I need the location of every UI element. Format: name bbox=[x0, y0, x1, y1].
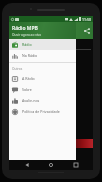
staticText: Rádio bbox=[22, 42, 32, 47]
staticText: 11:50 bbox=[82, 17, 91, 22]
button[interactable]: Home bbox=[44, 160, 58, 170]
button[interactable]: Avalie-nos bbox=[9, 95, 76, 106]
staticText: Outros bbox=[12, 67, 23, 71]
staticText: Política de Privacidade bbox=[22, 109, 60, 114]
button[interactable] bbox=[71, 139, 93, 148]
staticText: Sobre bbox=[22, 87, 32, 92]
button[interactable]: Política de Privacidade bbox=[9, 106, 76, 117]
button[interactable]: Na Rádio bbox=[9, 50, 76, 61]
button[interactable]: Recent apps bbox=[69, 160, 83, 170]
staticText: Ouvir agora ao vivo bbox=[12, 33, 42, 37]
button[interactable]: Sobre bbox=[9, 84, 76, 95]
button[interactable]: Share bbox=[81, 25, 92, 36]
button[interactable]: A Rádio bbox=[9, 73, 76, 84]
button[interactable]: Back bbox=[20, 160, 34, 170]
button[interactable]: Rádio bbox=[9, 39, 76, 50]
staticText: Rádio MPB bbox=[12, 25, 38, 32]
staticText: Na Rádio bbox=[22, 53, 38, 58]
staticText: A Rádio bbox=[22, 76, 35, 81]
staticText: Avalie-nos bbox=[22, 98, 40, 103]
